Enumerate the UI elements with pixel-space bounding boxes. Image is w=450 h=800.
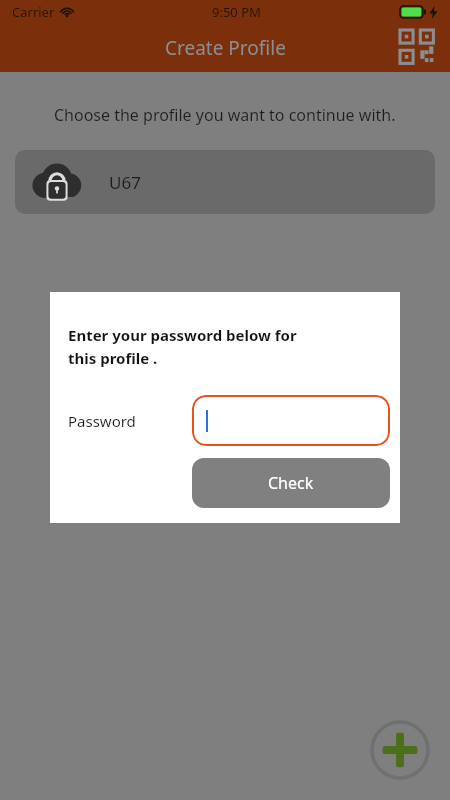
staticText: Enter your password below for [68, 325, 297, 345]
staticText: Password [68, 411, 136, 431]
button[interactable]: Scan QR code [394, 24, 442, 72]
button[interactable]: Add profile [370, 720, 430, 780]
staticText: this profile . [68, 348, 158, 368]
staticText: Create Profile [165, 35, 286, 61]
staticText: Check [268, 472, 314, 494]
button[interactable] [192, 395, 390, 446]
staticText: Carrier [12, 3, 55, 21]
button[interactable]: Check [192, 458, 390, 508]
button[interactable]: U67 [15, 150, 435, 214]
staticText: Choose the profile you want to continue … [54, 104, 396, 126]
staticText: 9:50 PM [212, 3, 261, 21]
staticText: U67 [109, 171, 141, 194]
